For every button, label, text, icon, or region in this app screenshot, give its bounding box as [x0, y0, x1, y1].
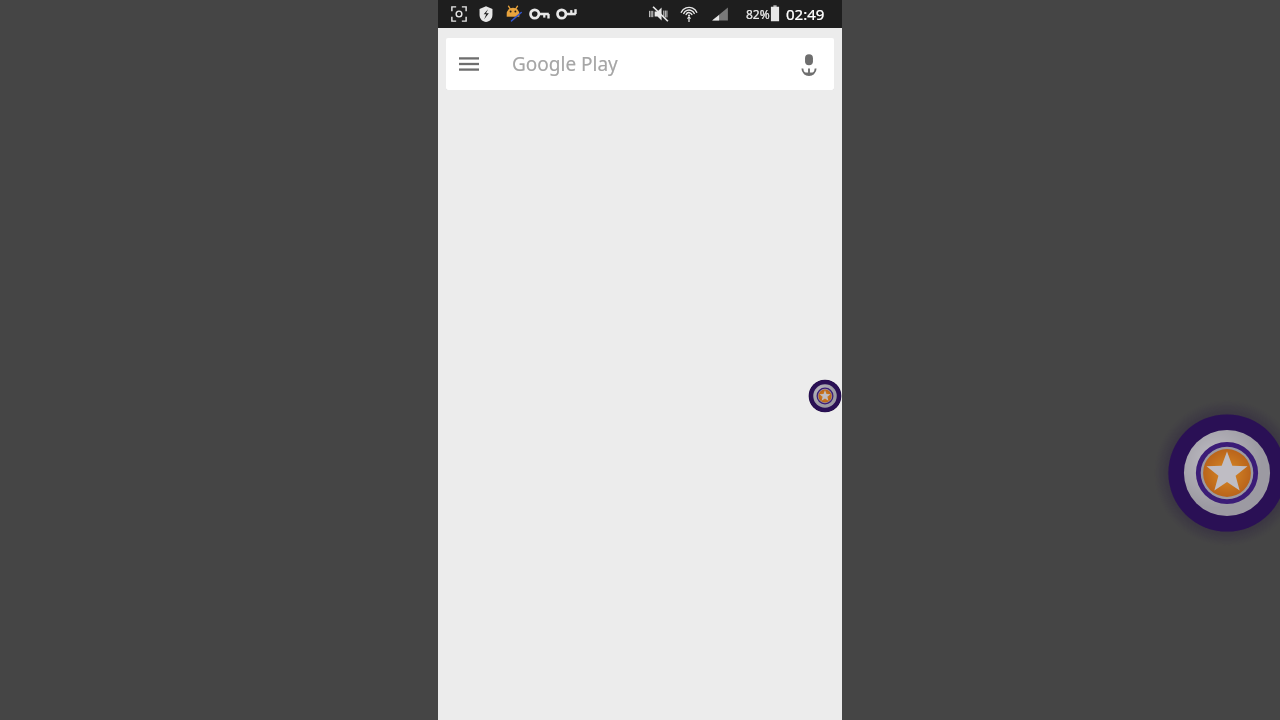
other: Shield badge — [808, 379, 842, 413]
button[interactable]: Open navigation menu — [446, 38, 834, 90]
button[interactable]: Search by voice — [784, 39, 834, 89]
staticText: Google Play — [512, 51, 618, 77]
staticText: 82% — [746, 6, 770, 22]
button[interactable]: Open navigation menu — [446, 41, 492, 87]
staticText: 02:49 — [786, 4, 825, 24]
